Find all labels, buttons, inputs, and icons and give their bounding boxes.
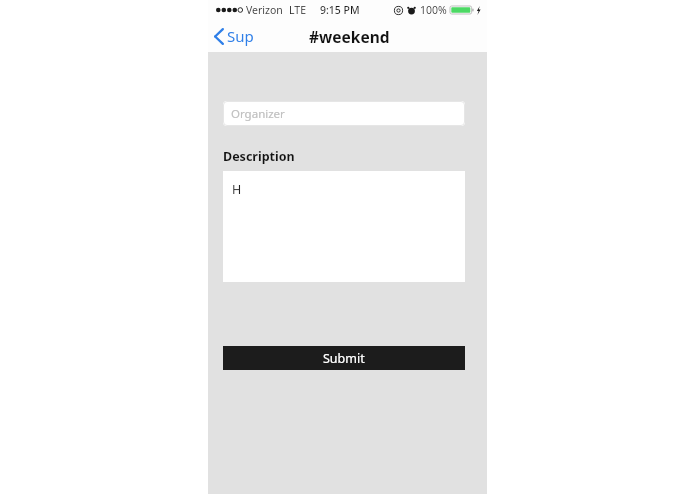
button[interactable]: Submit: [223, 346, 465, 370]
staticText: Submit: [323, 350, 365, 367]
staticText: #weekend: [309, 26, 390, 47]
staticText: 9:15 PM: [320, 3, 360, 17]
button[interactable]: Organizer: [223, 101, 465, 126]
staticText: 100%: [420, 3, 447, 17]
button[interactable]: Back to Sup: [214, 21, 254, 51]
staticText: Description: [223, 148, 295, 165]
staticText: Sup: [227, 26, 254, 46]
staticText: Verizon: [246, 3, 283, 17]
staticText: LTE: [289, 3, 306, 17]
staticText: Organizer: [231, 106, 285, 122]
staticText: H: [232, 181, 242, 198]
button[interactable]: H: [223, 171, 465, 282]
